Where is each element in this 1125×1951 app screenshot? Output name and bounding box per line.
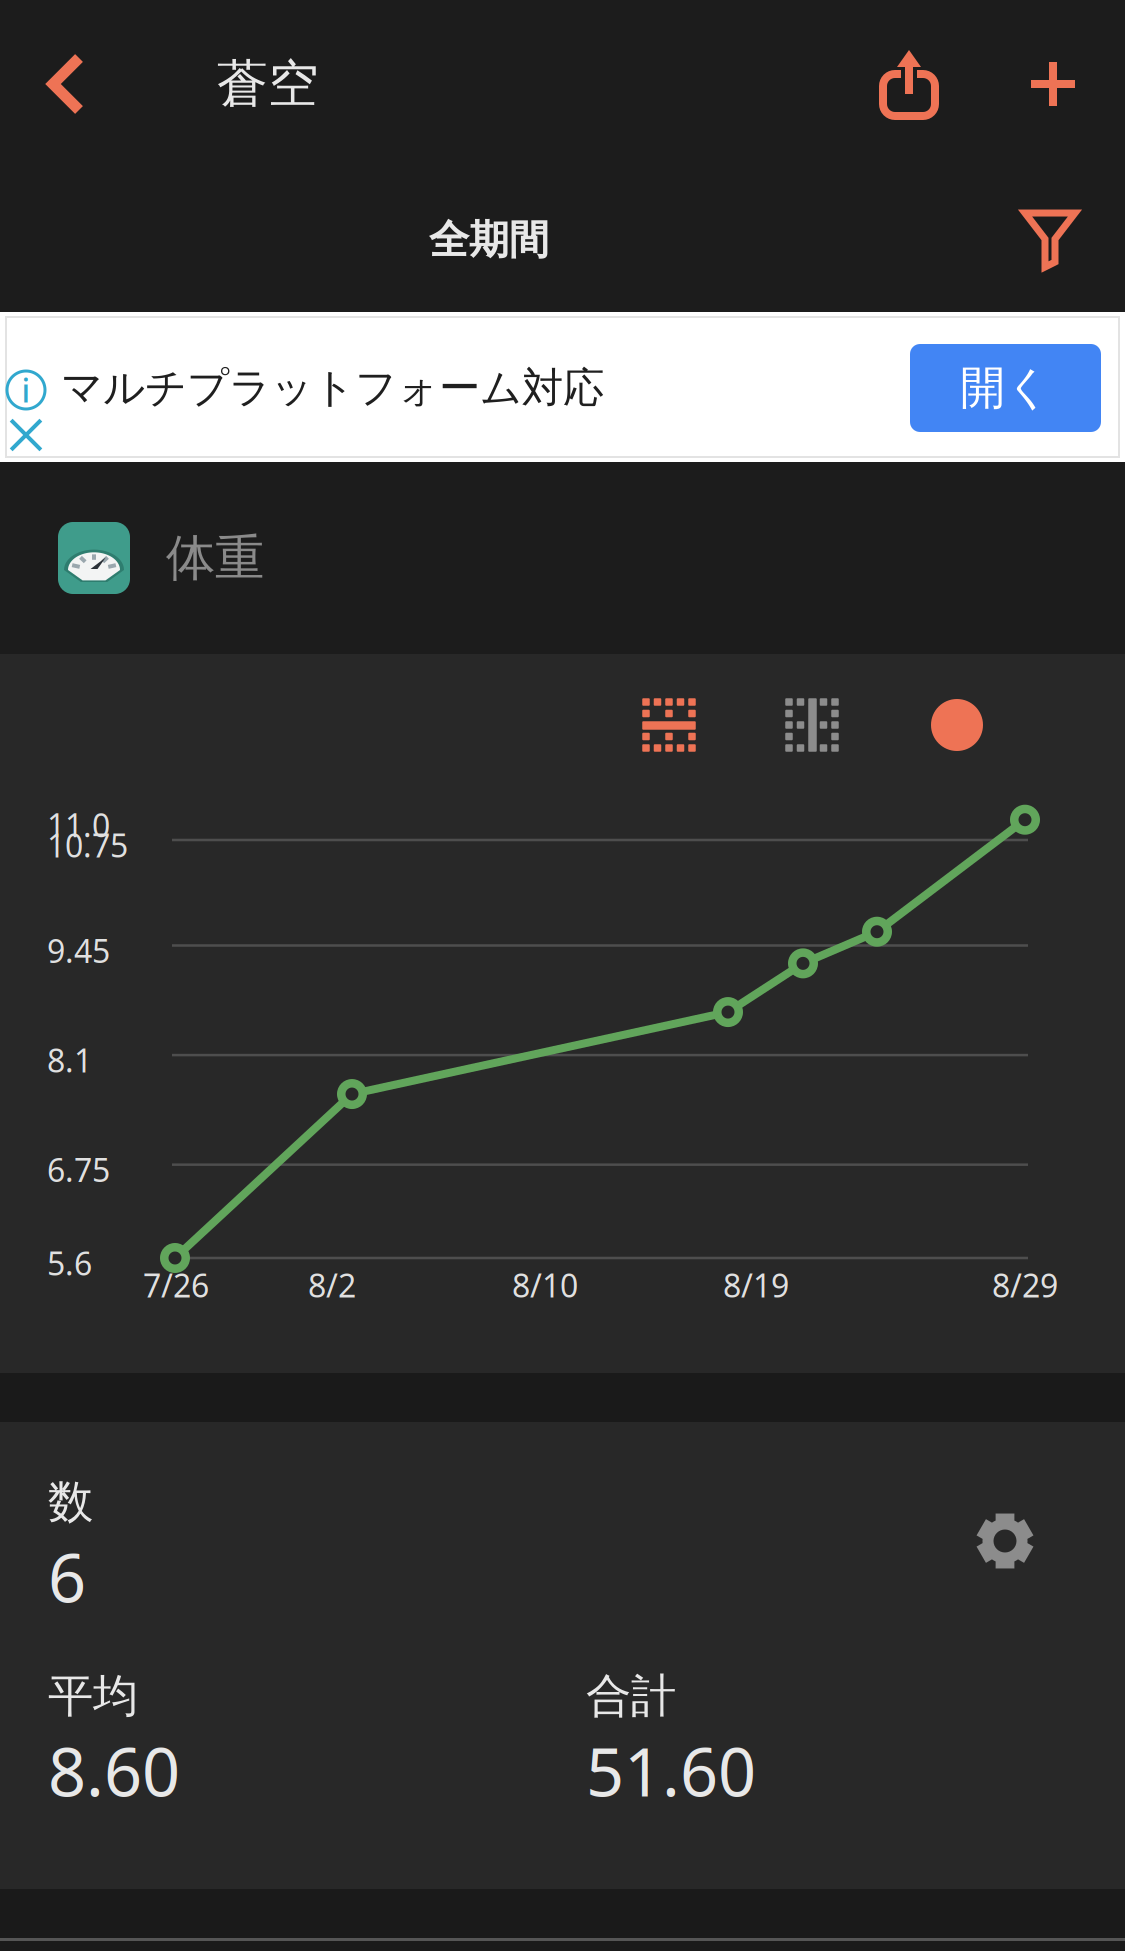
staticText: 全期間 — [429, 215, 549, 264]
staticText: 10.75 — [47, 824, 128, 866]
staticText: 7/26 — [143, 1264, 209, 1306]
button[interactable]: Back — [6, 0, 126, 168]
staticText: 6.75 — [47, 1148, 110, 1191]
staticText: 8/10 — [512, 1264, 578, 1306]
staticText: 8.60 — [48, 1726, 180, 1815]
staticText: 8.1 — [47, 1039, 92, 1081]
button[interactable]: Share — [849, 0, 969, 168]
staticText: 5.6 — [47, 1242, 92, 1284]
staticText: 平均 — [48, 1668, 138, 1724]
button[interactable]: Ad information — [0, 364, 52, 416]
staticText: 合計 — [586, 1668, 676, 1724]
button[interactable]: Series colour — [897, 671, 1017, 779]
staticText: 8/2 — [308, 1264, 356, 1306]
button[interactable]: Filter — [980, 168, 1120, 312]
staticText: 数 — [48, 1474, 93, 1530]
staticText: 開く — [960, 360, 1051, 416]
button[interactable]: Settings — [953, 1489, 1057, 1593]
staticText: 8/19 — [723, 1264, 789, 1306]
staticText: 体重 — [166, 528, 264, 588]
staticText: 8/29 — [992, 1264, 1058, 1306]
staticText: 蒼空 — [217, 53, 319, 115]
button[interactable]: Split chart — [752, 671, 872, 779]
staticText: マルチプラットフォーム対応 — [61, 363, 604, 413]
staticText: 6 — [48, 1532, 86, 1621]
button[interactable]: Dismiss ad — [0, 409, 52, 461]
staticText: 11.0 — [47, 803, 110, 846]
staticText: 51.60 — [586, 1726, 756, 1815]
staticText: i — [21, 369, 30, 411]
staticText: 9.45 — [47, 929, 110, 972]
button[interactable]: 開く — [910, 344, 1101, 432]
button[interactable]: Add — [998, 0, 1108, 168]
button[interactable]: Grouped chart — [609, 671, 729, 779]
